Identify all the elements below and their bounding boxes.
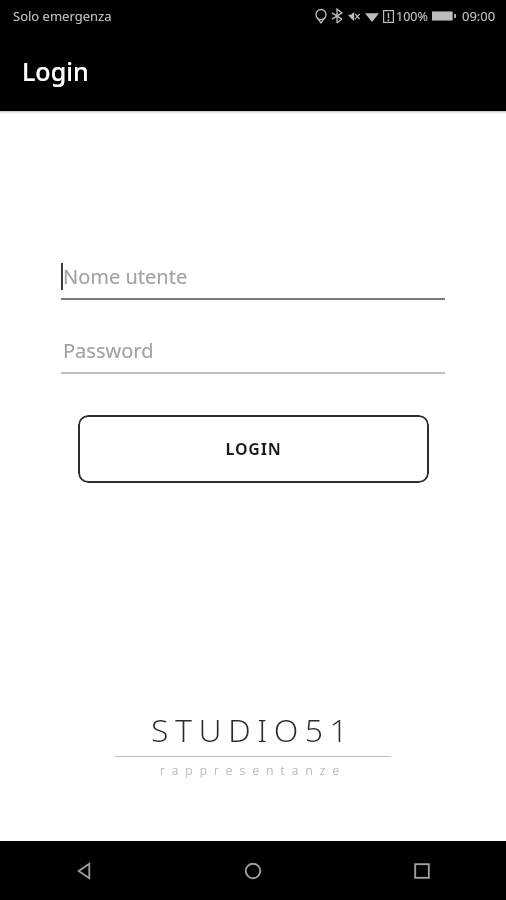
staticText: STUDIO51 bbox=[151, 708, 355, 752]
staticText: Login bbox=[22, 54, 89, 88]
button[interactable]: LOGIN bbox=[78, 415, 429, 483]
staticText: 100% bbox=[396, 8, 428, 25]
button[interactable]: Password bbox=[61, 326, 445, 374]
staticText: Password bbox=[63, 337, 154, 364]
staticText: rappresentanze bbox=[160, 762, 347, 778]
button[interactable]: Nome utente bbox=[61, 252, 445, 300]
staticText: Solo emergenza bbox=[13, 7, 112, 25]
button[interactable]: Recent apps bbox=[337, 841, 506, 900]
staticText: 09:00 bbox=[462, 7, 496, 25]
staticText: LOGIN bbox=[225, 438, 282, 460]
staticText: Nome utente bbox=[63, 263, 188, 290]
button[interactable]: Back bbox=[0, 841, 168, 900]
button[interactable]: Home bbox=[168, 841, 337, 900]
